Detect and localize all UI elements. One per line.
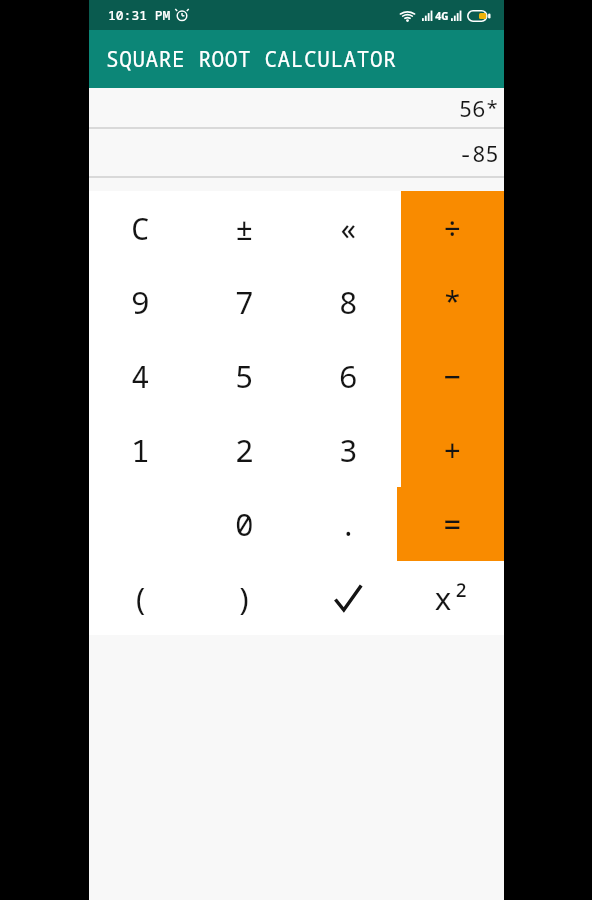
button[interactable]: ÷ xyxy=(400,191,504,265)
button[interactable]: 0 xyxy=(192,487,296,561)
button[interactable]: Backspace xyxy=(296,191,400,265)
button[interactable]: * xyxy=(400,265,504,339)
staticText: ± xyxy=(235,207,254,249)
button[interactable]: + xyxy=(400,413,504,487)
staticText: − xyxy=(443,355,462,397)
button[interactable]: ) xyxy=(192,561,296,635)
staticText: 2 xyxy=(235,429,254,471)
button[interactable]: C xyxy=(89,191,192,265)
button[interactable]: ( xyxy=(89,561,192,635)
staticText: 9 xyxy=(131,281,150,323)
button[interactable]: − xyxy=(400,339,504,413)
staticText: 56* xyxy=(459,93,499,123)
button[interactable]: . xyxy=(296,487,400,561)
button[interactable]: x² xyxy=(400,561,504,635)
button[interactable]: 3 xyxy=(296,413,400,487)
button[interactable]: 6 xyxy=(296,339,400,413)
staticText: 1 xyxy=(131,429,150,471)
staticText: SQUARE ROOT CALCULATOR xyxy=(106,45,397,74)
button[interactable]: ± xyxy=(192,191,296,265)
button[interactable]: = xyxy=(400,487,504,561)
staticText: 5 xyxy=(235,355,254,397)
staticText: C xyxy=(131,207,150,249)
staticText: 7 xyxy=(235,281,254,323)
staticText: ) xyxy=(235,577,254,619)
button[interactable]: 7 xyxy=(192,265,296,339)
button[interactable]: Square root xyxy=(296,561,400,635)
button[interactable]: 4 xyxy=(89,339,192,413)
staticText: 8 xyxy=(339,281,358,323)
staticText: ÷ xyxy=(443,207,462,249)
button[interactable]: 8 xyxy=(296,265,400,339)
staticText: 3 xyxy=(339,429,358,471)
staticText: 4 xyxy=(131,355,150,397)
staticText: x² xyxy=(434,578,470,619)
staticText: * xyxy=(443,281,462,323)
button[interactable]: 5 xyxy=(192,339,296,413)
staticText: 6 xyxy=(339,355,358,397)
staticText: 0 xyxy=(235,503,254,545)
staticText: + xyxy=(443,429,462,471)
button[interactable]: 9 xyxy=(89,265,192,339)
staticText: « xyxy=(339,207,358,249)
staticText: 10:31 PM xyxy=(108,6,171,24)
staticText: -85 xyxy=(459,138,499,168)
staticText: = xyxy=(443,503,462,545)
button[interactable]: 2 xyxy=(192,413,296,487)
staticText: . xyxy=(339,503,358,545)
button[interactable]: 1 xyxy=(89,413,192,487)
staticText: ( xyxy=(131,577,150,619)
staticText: 4G xyxy=(435,8,449,23)
